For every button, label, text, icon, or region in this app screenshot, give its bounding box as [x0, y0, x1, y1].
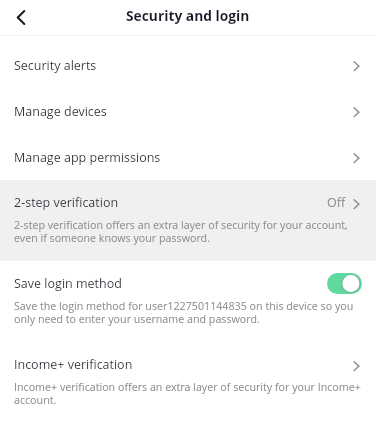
staticText: Manage app permissions: [14, 149, 161, 166]
staticText: 2-step verification offers an extra laye…: [14, 219, 362, 245]
staticText: Security and login: [126, 6, 250, 25]
staticText: Off: [327, 194, 346, 211]
button[interactable]: Save login method: [0, 273, 376, 294]
button[interactable]: 2-step verification: [0, 192, 376, 213]
button[interactable]: Back: [0, 1, 40, 34]
button[interactable]: Security alerts: [0, 42, 376, 88]
staticText: Save the login method for user1227501144…: [14, 300, 362, 326]
staticText: Security alerts: [14, 57, 97, 74]
staticText: Income+ verification: [14, 356, 133, 373]
button[interactable]: Income+ verification: [0, 354, 376, 375]
button[interactable]: Manage devices: [0, 88, 376, 134]
staticText: 2-step verification: [14, 194, 119, 211]
staticText: Save login method: [14, 275, 122, 292]
button[interactable]: Manage app permissions: [0, 134, 376, 180]
staticText: Manage devices: [14, 103, 107, 120]
staticText: Income+ verification offers an extra lay…: [14, 381, 362, 407]
button[interactable]: Save login method, on: [327, 273, 362, 294]
